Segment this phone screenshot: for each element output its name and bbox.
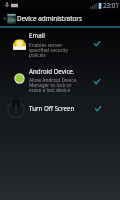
other: Enabled	[95, 106, 101, 112]
button[interactable]: Android Device.	[0, 66, 120, 98]
staticText: Android Device.	[29, 67, 75, 75]
staticText: Email	[29, 31, 45, 39]
staticText: Enables server- specified security polic…	[29, 42, 68, 58]
other: Navigate up	[3, 17, 6, 20]
other: Enabled	[94, 79, 100, 85]
staticText: Turn Off Screen	[29, 104, 75, 112]
other: Enabled	[94, 41, 100, 47]
button[interactable]: Turn Off Screen	[0, 100, 120, 121]
button[interactable]: Email	[0, 30, 120, 61]
staticText: 23:01	[103, 1, 119, 9]
button[interactable]: Navigate up	[0, 10, 120, 26]
staticText: Allow Android Device Manager to lock or …	[29, 77, 77, 93]
staticText: Device administrators	[17, 14, 82, 23]
